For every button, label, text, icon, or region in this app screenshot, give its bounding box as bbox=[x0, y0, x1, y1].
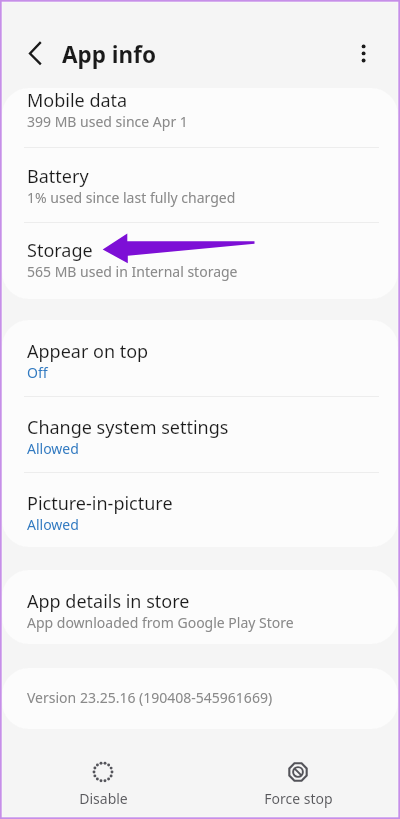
button[interactable]: Picture-in-picture bbox=[2, 472, 398, 547]
staticText: 565 MB used in Internal storage bbox=[27, 262, 238, 281]
button[interactable]: Force stop bbox=[240, 748, 356, 812]
button[interactable]: Battery bbox=[2, 147, 398, 222]
staticText: Allowed bbox=[27, 515, 79, 534]
button[interactable]: Change system settings bbox=[2, 396, 398, 472]
button[interactable]: Storage bbox=[2, 222, 398, 299]
staticText: Disable bbox=[79, 789, 128, 808]
staticText: App details in store bbox=[27, 589, 190, 614]
button[interactable]: Back bbox=[17, 36, 53, 72]
staticText: 1% used since last fully charged bbox=[27, 188, 236, 207]
staticText: Battery bbox=[27, 164, 89, 189]
staticText: Picture-in-picture bbox=[27, 491, 173, 516]
staticText: App info bbox=[62, 39, 156, 70]
button[interactable]: App details in store bbox=[2, 570, 398, 644]
staticText: Version 23.25.16 (190408-545961669) bbox=[27, 688, 273, 707]
button[interactable]: Mobile data bbox=[2, 88, 398, 147]
staticText: App downloaded from Google Play Store bbox=[27, 613, 294, 632]
staticText: Change system settings bbox=[27, 415, 229, 440]
button[interactable]: More options bbox=[348, 36, 380, 68]
staticText: Mobile data bbox=[27, 88, 128, 113]
button[interactable]: Appear on top bbox=[2, 320, 398, 396]
staticText: Allowed bbox=[27, 439, 79, 458]
staticText: Force stop bbox=[264, 789, 333, 808]
staticText: Appear on top bbox=[27, 339, 149, 364]
staticText: 399 MB used since Apr 1 bbox=[27, 112, 188, 131]
button[interactable]: Disable bbox=[45, 748, 161, 812]
staticText: Storage bbox=[27, 238, 93, 263]
staticText: Off bbox=[27, 363, 48, 382]
